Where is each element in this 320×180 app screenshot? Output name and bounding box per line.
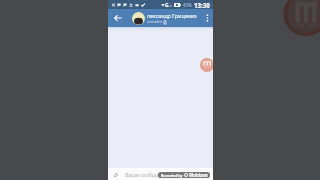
staticText: G — [165, 2, 169, 9]
button[interactable]: More options — [201, 9, 213, 27]
button[interactable]: Attach — [108, 168, 123, 180]
staticText: 13:30 — [194, 1, 210, 9]
staticText: 45% — [183, 2, 192, 8]
staticText: онлайн — [147, 19, 163, 25]
staticText: Mobizen — [189, 172, 208, 178]
staticText: Recorded by — [161, 173, 183, 178]
staticText: Ваше сообщение — [125, 171, 169, 178]
button[interactable]: Back — [108, 9, 128, 27]
staticText: лександр Гриценко — [147, 12, 197, 19]
